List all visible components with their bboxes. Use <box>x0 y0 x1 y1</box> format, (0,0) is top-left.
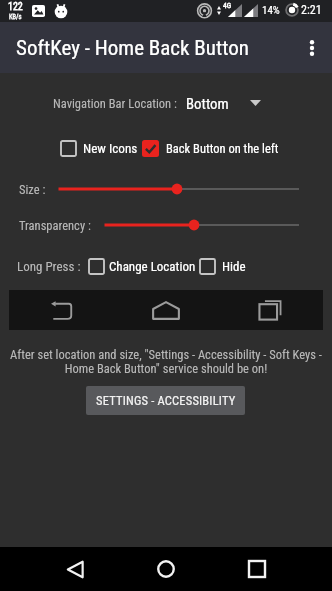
staticText: 14% <box>262 4 280 17</box>
button[interactable]: More options <box>296 22 328 73</box>
staticText: 2:21 <box>301 3 322 17</box>
button[interactable]: Recents <box>227 547 287 591</box>
button[interactable] <box>0 178 332 200</box>
staticText: Size : <box>19 182 46 197</box>
button[interactable]: Home <box>140 290 192 330</box>
staticText: Hide <box>222 259 246 274</box>
staticText: SoftKey - Home Back Button <box>16 36 249 61</box>
button[interactable]: Back Button on the left <box>142 138 279 158</box>
button[interactable]: New Icons <box>60 138 138 158</box>
button[interactable]: Back <box>45 547 105 591</box>
staticText: After set location and size, "Settings -… <box>6 347 326 377</box>
staticText: Back Button on the left <box>166 141 279 156</box>
button[interactable]: Recents <box>244 290 296 330</box>
staticText: KB/s <box>9 13 22 21</box>
staticText: New Icons <box>83 141 138 156</box>
button[interactable]: Hide <box>199 256 246 276</box>
button[interactable]: Change Location <box>88 256 196 276</box>
staticText: Change Location <box>109 259 196 274</box>
staticText: 4G <box>223 1 232 10</box>
staticText: Bottom <box>186 95 229 112</box>
button[interactable]: Home <box>136 547 196 591</box>
staticText: SETTINGS - ACCESSIBILITY <box>96 393 236 408</box>
staticText: Navigation Bar Location : <box>53 96 177 111</box>
staticText: Transparency : <box>19 218 91 233</box>
button[interactable]: Back <box>36 290 88 330</box>
button[interactable]: SETTINGS - ACCESSIBILITY <box>86 386 245 415</box>
button[interactable]: Bottom <box>182 92 268 114</box>
staticText: Long Press : <box>17 259 81 274</box>
button[interactable] <box>0 214 332 236</box>
staticText: 122 <box>8 1 23 13</box>
